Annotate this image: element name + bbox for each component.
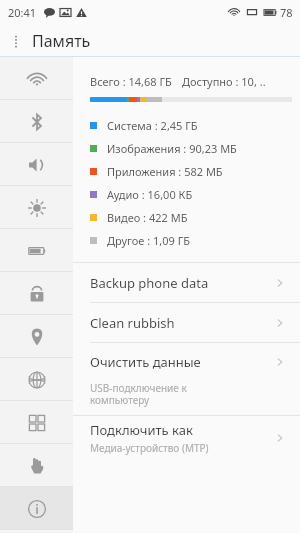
- staticText: Подключить как: [90, 421, 193, 439]
- button[interactable]: Sound: [0, 143, 73, 186]
- button[interactable]: Brightness: [0, 186, 73, 229]
- button[interactable]: Wi-Fi: [0, 57, 73, 100]
- button[interactable]: About: [0, 487, 73, 530]
- staticText: 78: [280, 5, 293, 20]
- button[interactable]: Network: [0, 358, 73, 401]
- button[interactable]: Backup phone data: [90, 263, 286, 302]
- staticText: Backup phone data: [90, 274, 209, 292]
- staticText: Система : 2,45 ГБ: [107, 118, 198, 133]
- staticText: Память: [32, 30, 91, 52]
- button[interactable]: Menu: [0, 24, 32, 57]
- staticText: Приложения : 582 МБ: [107, 164, 223, 179]
- staticText: Аудио : 16,00 КБ: [107, 187, 193, 202]
- button[interactable]: Gestures: [0, 444, 73, 487]
- staticText: USB-подключение к компьютеру: [90, 381, 187, 407]
- button[interactable]: Clean rubbish: [90, 303, 286, 342]
- button[interactable]: Bluetooth: [0, 100, 73, 143]
- button[interactable]: Battery: [0, 229, 73, 272]
- staticText: 20:41: [8, 5, 37, 20]
- button[interactable]: Apps: [0, 401, 73, 444]
- staticText: Доступно : 10, ..: [182, 74, 266, 89]
- staticText: Clean rubbish: [90, 314, 175, 332]
- button[interactable]: Security: [0, 272, 73, 315]
- staticText: Другое : 1,09 ГБ: [107, 233, 190, 248]
- staticText: Видео : 422 МБ: [107, 210, 188, 225]
- button[interactable]: Очистить данные: [73, 343, 300, 415]
- button[interactable]: Location: [0, 315, 73, 358]
- button[interactable]: Подключить как: [90, 416, 286, 460]
- staticText: Очистить данные: [90, 353, 201, 371]
- staticText: Медиа-устройство (MTP): [90, 441, 209, 455]
- staticText: Всего : 14,68 ГБ: [90, 74, 172, 89]
- staticText: Изображения : 90,23 МБ: [107, 141, 237, 156]
